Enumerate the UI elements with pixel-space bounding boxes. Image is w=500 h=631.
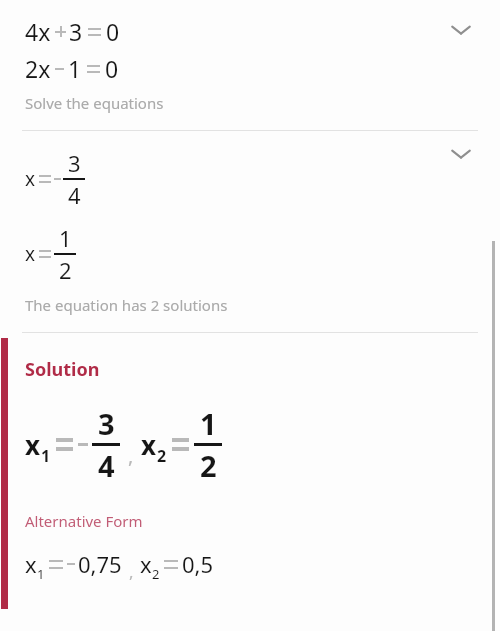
staticText: Solution <box>25 357 100 382</box>
staticText: 0 <box>106 16 120 47</box>
staticText: , <box>129 560 134 583</box>
staticText: x <box>25 241 36 267</box>
staticText: 4 <box>98 446 115 485</box>
staticText: 1 <box>68 53 82 84</box>
staticText: 1 <box>59 223 72 253</box>
staticText: 4 <box>68 180 81 210</box>
staticText: x <box>25 166 36 192</box>
staticText: x <box>140 549 152 579</box>
staticText: x <box>141 427 157 462</box>
staticText: 3 <box>68 148 81 178</box>
staticText: 3 <box>98 404 115 443</box>
staticText: x <box>25 427 41 462</box>
button[interactable]: Expand <box>439 132 483 176</box>
staticText: The equation has 2 solutions <box>25 295 228 315</box>
staticText: Solve the equations <box>25 93 164 113</box>
staticText: 4x <box>25 16 51 47</box>
staticText: 0,75 <box>78 549 122 579</box>
staticText: 0 <box>105 53 119 84</box>
staticText: 1 <box>41 445 51 467</box>
staticText: , <box>128 442 134 469</box>
staticText: 3 <box>69 16 83 47</box>
staticText: 2 <box>200 446 217 485</box>
staticText: 1 <box>200 404 217 443</box>
button[interactable]: Solve the equations <box>25 93 164 113</box>
staticText: 2 <box>152 565 160 583</box>
staticText: 2x <box>25 53 51 84</box>
staticText: 2 <box>59 255 72 285</box>
staticText: 1 <box>37 565 45 583</box>
staticText: 2 <box>157 445 167 467</box>
staticText: x <box>25 549 37 579</box>
staticText: Alternative Form <box>25 511 143 531</box>
button[interactable]: Expand <box>439 8 483 52</box>
staticText: 0,5 <box>182 549 214 579</box>
